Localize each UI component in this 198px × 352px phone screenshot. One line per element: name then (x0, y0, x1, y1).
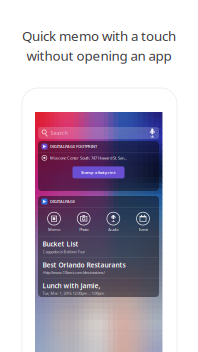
button[interactable]: Audio (106, 212, 120, 232)
staticText: Stamp a footprint (81, 170, 116, 175)
staticText: Lunch with Jamie, (42, 281, 100, 290)
staticText: DIGITALPAGE FOOTPRINT (50, 144, 97, 149)
staticText: Memo (48, 227, 60, 232)
staticText: DIGITALPAGE (50, 199, 75, 204)
staticText: Tue, Mar 1, 2016 12:00pm – 1:00pm (42, 291, 104, 296)
button[interactable]: Photo (77, 212, 91, 232)
staticText: Moscone Center South, 747 Howard St, San… (50, 155, 127, 160)
button[interactable]: Stamp a footprint (72, 166, 124, 178)
staticText: Photo (79, 227, 88, 232)
staticText: Bucket List (42, 240, 78, 248)
button[interactable]: Bucket List (38, 237, 159, 257)
button[interactable]: Memo (47, 212, 61, 232)
button[interactable]: Event (136, 212, 150, 232)
staticText: Event (138, 227, 147, 232)
staticText: Http://www.10best.com/destinations/ (42, 270, 104, 275)
staticText: Audio (108, 227, 118, 232)
staticText: Cappadocia Balloon Tour (42, 249, 85, 254)
staticText: without opening an app (26, 47, 171, 64)
button[interactable]: Search (38, 127, 159, 139)
button[interactable]: Best Orlando Restaurants (38, 258, 159, 278)
staticText: Search (50, 129, 67, 137)
staticText: Quick memo with a touch (22, 27, 176, 45)
staticText: Best Orlando Restaurants (42, 260, 125, 269)
button[interactable]: Lunch with Jamie, (38, 278, 159, 299)
